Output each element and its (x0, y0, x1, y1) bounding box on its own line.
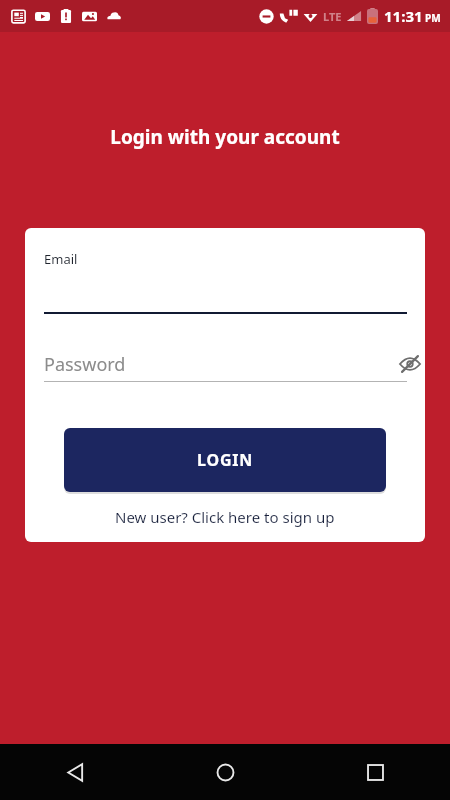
button[interactable]: Home (150, 744, 300, 800)
staticText: New user? Click here to sign up (115, 507, 335, 527)
staticText: LTE (323, 9, 342, 24)
staticText: PM (425, 11, 441, 25)
button[interactable]: Email (44, 250, 425, 296)
staticText: Password (44, 352, 126, 377)
button[interactable]: Recent apps (300, 744, 450, 800)
button[interactable]: Show password (391, 345, 425, 383)
staticText: 11:31 (384, 6, 423, 26)
button[interactable]: LOGIN (64, 428, 386, 492)
button[interactable]: New user? Click here to sign up (25, 500, 425, 534)
staticText: Email (44, 250, 78, 268)
staticText: Login with your account (0, 124, 450, 150)
button[interactable]: Password (44, 346, 407, 382)
button[interactable]: Back (0, 744, 150, 800)
staticText: LOGIN (197, 449, 254, 471)
